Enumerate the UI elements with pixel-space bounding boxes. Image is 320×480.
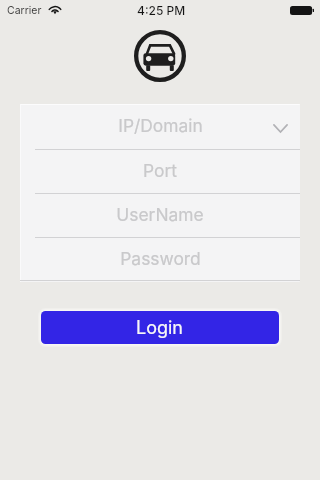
staticText: 4:25 PM [137,3,186,18]
staticText: Port [143,160,177,181]
staticText: Password [120,248,201,269]
button[interactable]: IP/Domain [20,104,300,149]
staticText: UserName [116,204,204,225]
staticText: Carrier [7,4,42,17]
button[interactable]: Password [20,237,300,281]
staticText: Login [136,317,184,339]
button[interactable]: Show saved hosts [267,113,297,143]
other: App logo [134,30,186,82]
button[interactable]: Login [41,311,279,344]
button[interactable]: UserName [20,193,300,237]
staticText: IP/Domain [118,115,203,136]
button[interactable]: Port [20,149,300,193]
